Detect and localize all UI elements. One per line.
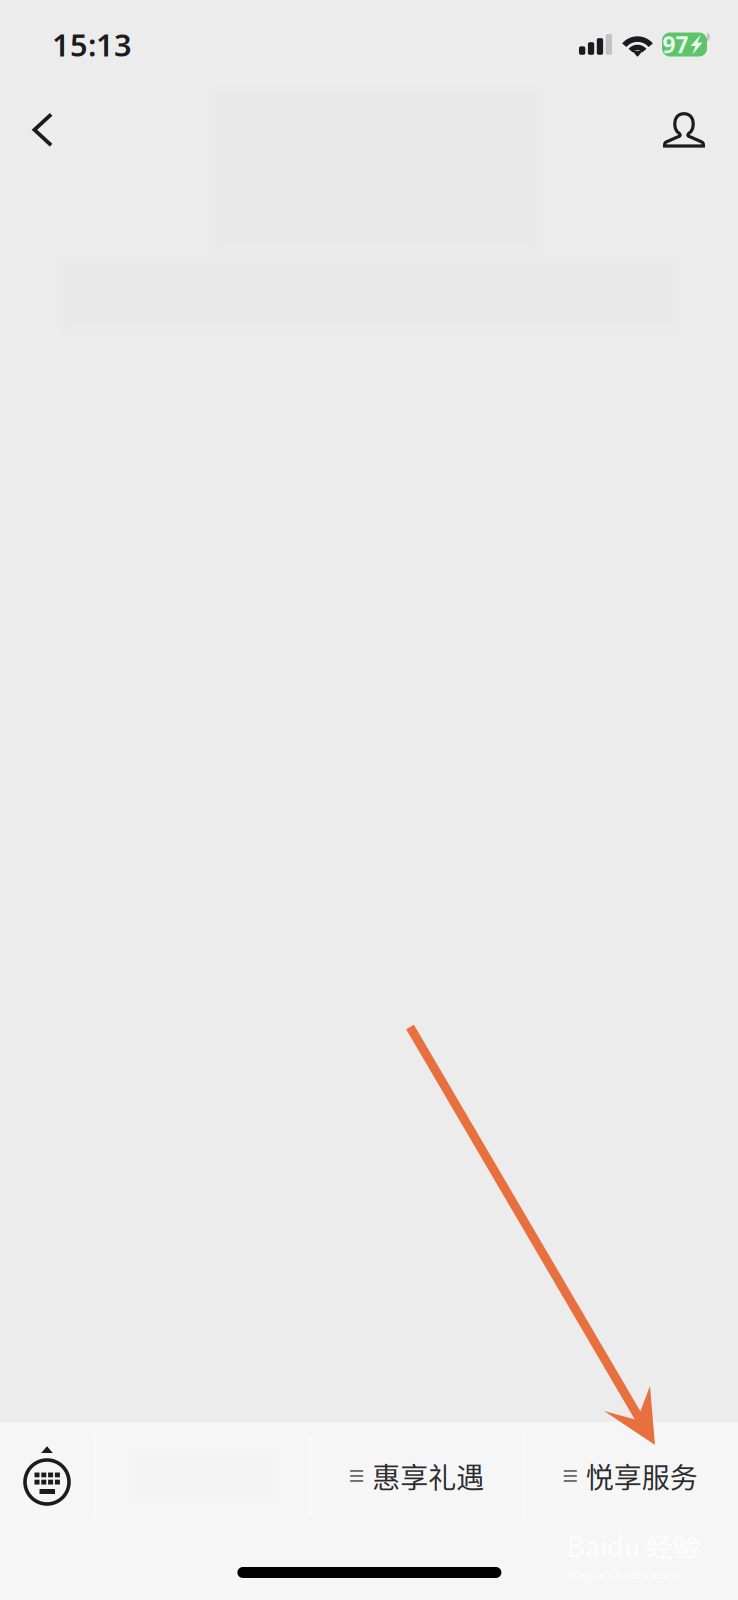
staticText: 97: [662, 29, 688, 59]
button[interactable]: 惠享礼遇: [311, 1428, 523, 1524]
staticText: 悦享服务: [586, 1456, 698, 1496]
staticText: 惠享礼遇: [372, 1456, 484, 1496]
button[interactable]: Keyboard: [0, 1428, 94, 1524]
staticText: 15:13: [52, 24, 132, 65]
button[interactable]: Back: [5, 92, 81, 168]
button[interactable]: 悦享服务: [525, 1428, 738, 1524]
button[interactable]: Account: [646, 92, 722, 168]
